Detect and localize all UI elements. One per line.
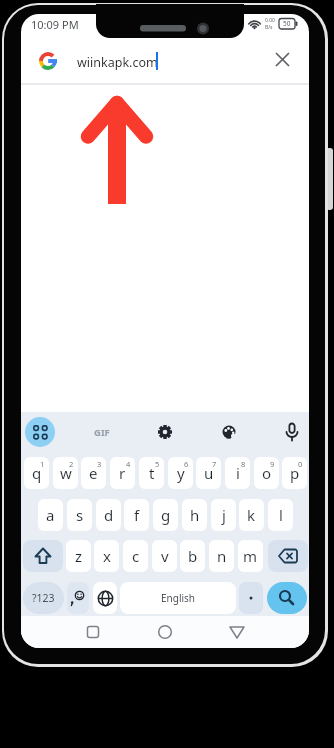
- staticText: 0.00 B/s: [265, 17, 275, 31]
- button[interactable]: e: [81, 457, 106, 489]
- staticText: t: [149, 463, 155, 483]
- button[interactable]: d: [96, 499, 121, 531]
- staticText: p: [290, 463, 300, 483]
- staticText: o: [262, 463, 272, 483]
- button[interactable]: x: [94, 540, 119, 572]
- button[interactable]: English: [120, 582, 236, 614]
- button[interactable]: [23, 540, 63, 572]
- staticText: r: [119, 463, 126, 483]
- button[interactable]: j: [211, 499, 236, 531]
- button[interactable]: a: [38, 499, 63, 531]
- staticText: 3: [97, 459, 102, 469]
- staticText: English: [161, 591, 196, 605]
- staticText: g: [161, 505, 171, 525]
- staticText: wiinkapk.com: [77, 54, 158, 71]
- staticText: a: [46, 505, 55, 525]
- staticText: e: [89, 463, 98, 483]
- button[interactable]: u: [196, 457, 221, 489]
- staticText: w: [60, 463, 72, 483]
- button[interactable]: z: [66, 540, 91, 572]
- staticText: v: [161, 546, 169, 566]
- button[interactable]: c: [123, 540, 148, 572]
- button[interactable]: p: [282, 457, 307, 489]
- button[interactable]: [151, 618, 179, 646]
- staticText: 6: [184, 459, 189, 469]
- button[interactable]: [268, 540, 308, 572]
- button[interactable]: b: [180, 540, 205, 572]
- staticText: u: [204, 463, 214, 483]
- staticText: ?123: [32, 591, 55, 605]
- staticText: j: [222, 505, 226, 525]
- button[interactable]: [151, 418, 179, 446]
- button[interactable]: f: [124, 499, 149, 531]
- staticText: i: [236, 463, 240, 483]
- button[interactable]: [267, 582, 307, 614]
- staticText: k: [247, 505, 256, 525]
- button[interactable]: wiinkapk.com: [21, 34, 309, 83]
- button[interactable]: v: [152, 540, 177, 572]
- button[interactable]: o: [254, 457, 279, 489]
- staticText: n: [217, 546, 227, 566]
- button[interactable]: q: [24, 457, 49, 489]
- staticText: 9: [270, 459, 275, 469]
- staticText: 8: [241, 459, 246, 469]
- staticText: 7: [212, 459, 217, 469]
- staticText: 4: [126, 459, 131, 469]
- button[interactable]: s: [67, 499, 92, 531]
- staticText: x: [103, 546, 111, 566]
- staticText: l: [279, 505, 283, 525]
- button[interactable]: r: [110, 457, 135, 489]
- button[interactable]: [269, 46, 296, 73]
- staticText: 5: [155, 459, 160, 469]
- button[interactable]: h: [182, 499, 207, 531]
- staticText: q: [32, 463, 42, 483]
- staticText: 50: [283, 19, 291, 28]
- staticText: GIF: [94, 426, 110, 439]
- button[interactable]: [215, 418, 243, 446]
- staticText: c: [132, 546, 140, 566]
- button[interactable]: [25, 417, 55, 447]
- staticText: b: [188, 546, 198, 566]
- staticText: m: [243, 546, 258, 566]
- staticText: 0: [298, 459, 303, 469]
- button[interactable]: ?123: [23, 582, 64, 614]
- staticText: 2: [69, 459, 74, 469]
- button[interactable]: n: [209, 540, 234, 572]
- staticText: s: [76, 505, 84, 525]
- button[interactable]: [67, 582, 89, 614]
- button[interactable]: [239, 582, 263, 614]
- staticText: 10:09 PM: [31, 17, 79, 32]
- staticText: h: [190, 505, 200, 525]
- button[interactable]: GIF: [88, 418, 116, 446]
- button[interactable]: i: [225, 457, 250, 489]
- button[interactable]: [278, 418, 306, 446]
- button[interactable]: w: [53, 457, 78, 489]
- button[interactable]: k: [239, 499, 264, 531]
- staticText: z: [75, 546, 83, 566]
- button[interactable]: [79, 618, 107, 646]
- button[interactable]: [93, 582, 117, 614]
- button[interactable]: y: [168, 457, 193, 489]
- button[interactable]: m: [238, 540, 263, 572]
- staticText: d: [104, 505, 114, 525]
- button[interactable]: [223, 618, 251, 646]
- staticText: y: [177, 463, 185, 483]
- staticText: f: [134, 505, 140, 525]
- button[interactable]: l: [268, 499, 293, 531]
- staticText: 1: [40, 459, 45, 469]
- button[interactable]: g: [153, 499, 178, 531]
- button[interactable]: t: [139, 457, 164, 489]
